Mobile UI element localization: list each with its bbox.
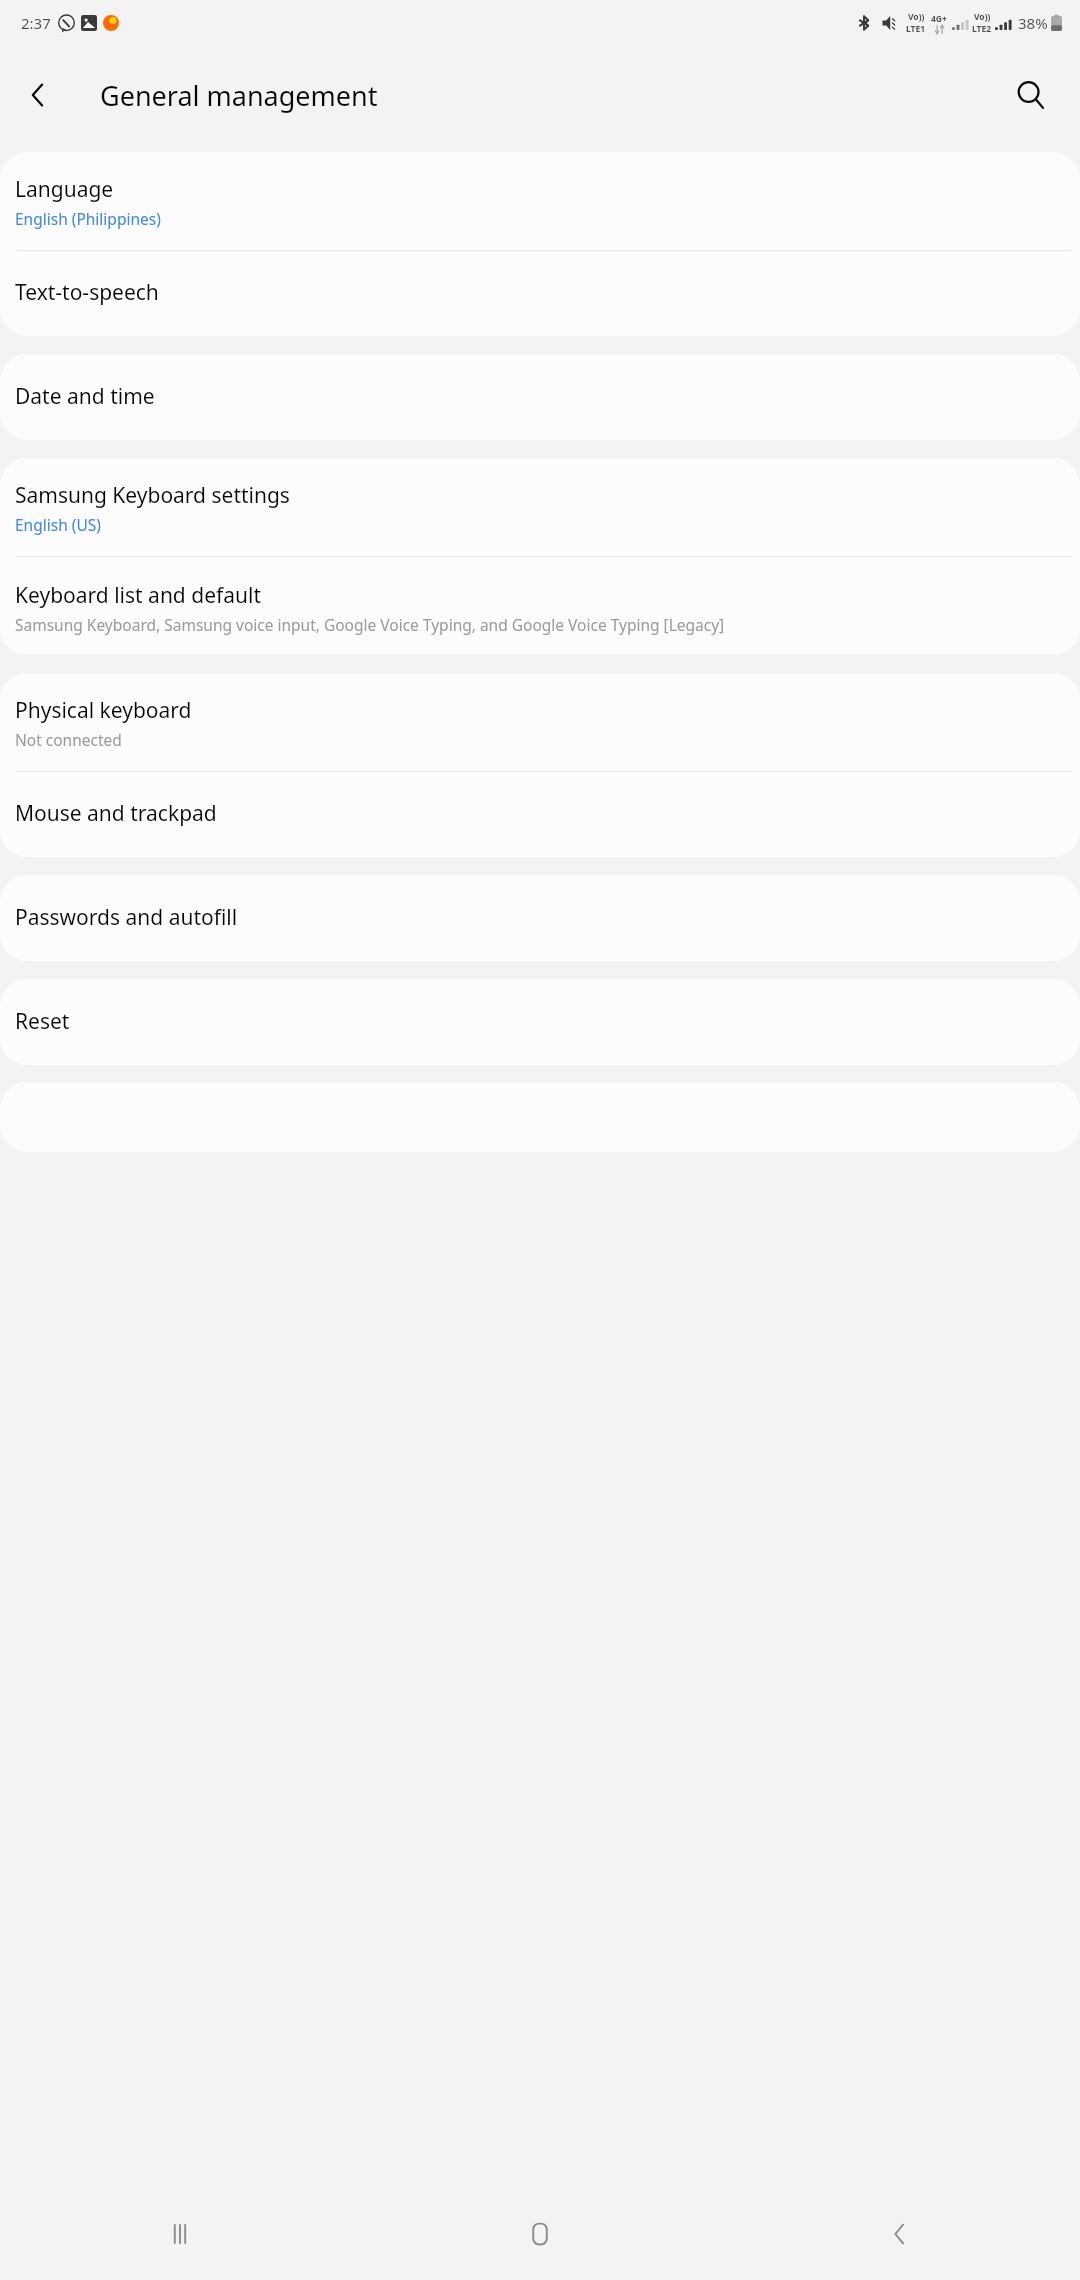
staticText: Samsung Keyboard settings xyxy=(15,481,290,510)
staticText: Keyboard list and default xyxy=(15,581,261,610)
staticText: Reset xyxy=(15,1007,70,1036)
staticText: 38% xyxy=(1018,13,1048,33)
button[interactable]: Passwords and autofill xyxy=(0,875,1080,961)
button[interactable]: Language xyxy=(0,152,1080,250)
button[interactable]: Back xyxy=(720,2188,1080,2280)
staticText: Text-to-speech xyxy=(15,278,159,307)
button[interactable]: Search xyxy=(1000,64,1062,126)
staticText: 4G+ xyxy=(931,13,947,25)
staticText: Language xyxy=(15,175,114,204)
button[interactable]: Reset xyxy=(0,979,1080,1065)
staticText: Physical keyboard xyxy=(15,696,192,725)
staticText: Date and time xyxy=(15,382,155,411)
staticText: Vo)) xyxy=(908,11,925,23)
staticText: 2:37 xyxy=(21,13,51,33)
button[interactable]: Text-to-speech xyxy=(0,251,1080,336)
staticText: English (Philippines) xyxy=(15,208,161,229)
button[interactable]: Samsung Keyboard settings xyxy=(0,458,1080,556)
button[interactable]: Recents xyxy=(0,2188,360,2280)
staticText: Not connected xyxy=(15,729,122,750)
staticText: General management xyxy=(100,77,378,114)
staticText: Samsung Keyboard, Samsung voice input, G… xyxy=(15,614,725,635)
button[interactable]: Physical keyboard xyxy=(0,673,1080,771)
staticText: Passwords and autofill xyxy=(15,903,238,932)
button[interactable]: Date and time xyxy=(0,354,1080,440)
button[interactable]: Home xyxy=(360,2188,720,2280)
staticText: Vo)) xyxy=(974,11,991,23)
staticText: LTE1 xyxy=(906,23,926,35)
button[interactable]: Back xyxy=(8,65,68,125)
staticText: LTE2 xyxy=(972,23,992,35)
staticText: English (US) xyxy=(15,514,101,535)
staticText: Mouse and trackpad xyxy=(15,799,217,828)
button[interactable]: Mouse and trackpad xyxy=(0,772,1080,857)
button[interactable]: Keyboard list and default xyxy=(0,557,1080,655)
